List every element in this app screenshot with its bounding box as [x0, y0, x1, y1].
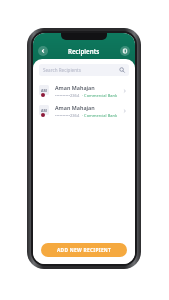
staticText: AM: [41, 88, 47, 93]
other: Open recipient: [121, 107, 129, 115]
button[interactable]: Notifications: [120, 46, 130, 56]
staticText: · Commercial Bank: [82, 93, 118, 98]
staticText: · Commercial Bank: [82, 113, 118, 118]
button[interactable]: ADD NEW RECIPIENT: [41, 243, 127, 257]
staticText: Aman Mahajan: [55, 104, 95, 111]
staticText: Recipients: [68, 47, 100, 55]
staticText: Aman Mahajan: [55, 84, 95, 91]
staticText: ••••••••••2364: [55, 113, 80, 118]
button[interactable]: Search Recipients: [39, 64, 129, 76]
button[interactable]: Back: [38, 46, 48, 56]
button[interactable]: AM: [33, 101, 135, 121]
staticText: ADD NEW RECIPIENT: [57, 247, 112, 254]
staticText: ••••••••••2364: [55, 93, 80, 98]
other: Open recipient: [121, 87, 129, 95]
staticText: AM: [41, 108, 47, 113]
button[interactable]: AM: [33, 81, 135, 101]
staticText: Search Recipients: [43, 67, 81, 73]
